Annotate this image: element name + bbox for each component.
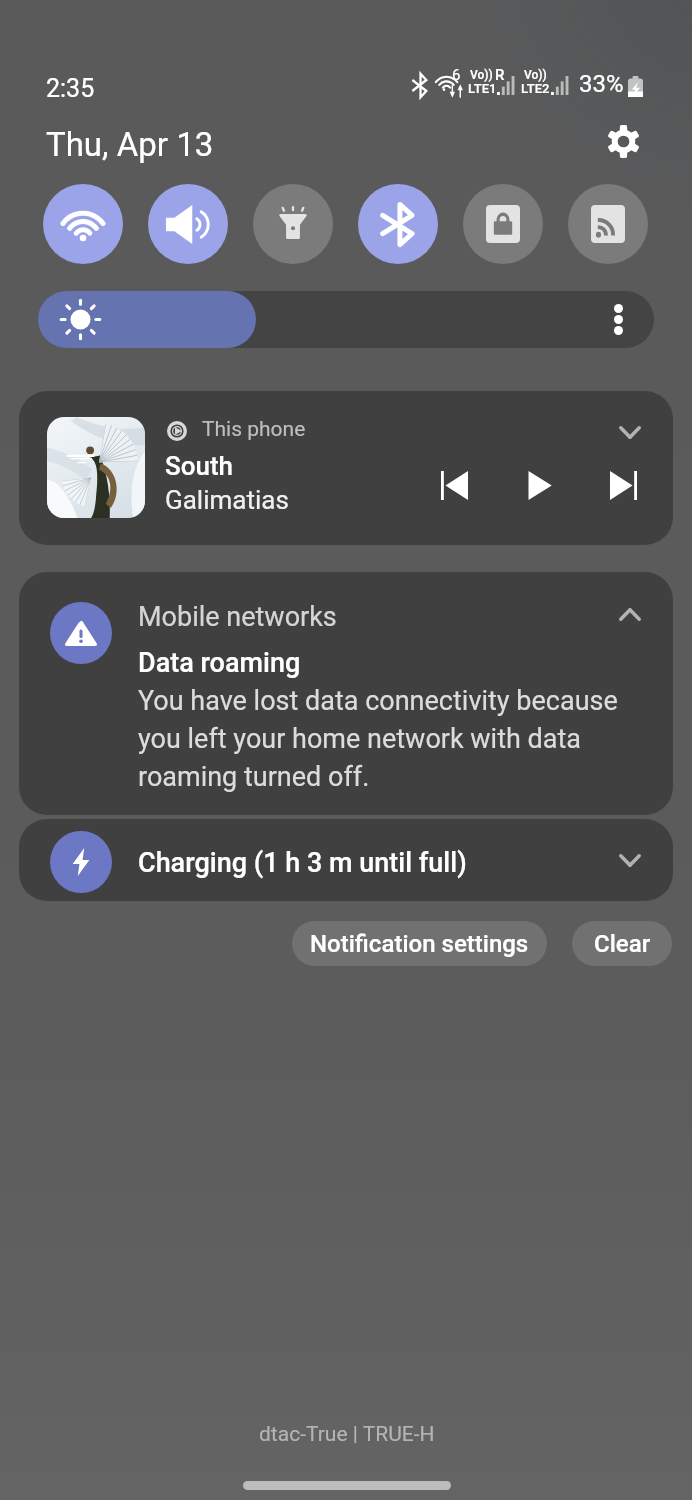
staticText: Charging (1 h 3 m until full) <box>138 847 467 879</box>
button[interactable]: Brightness <box>38 291 654 348</box>
button[interactable]: Bluetooth <box>358 184 438 264</box>
staticText: Thu, Apr 13 <box>46 125 214 164</box>
staticText: Notification settings <box>310 930 529 958</box>
staticText: R <box>495 66 505 84</box>
staticText: dtac-True | TRUE-H <box>259 1422 435 1447</box>
staticText: Vo)) <box>470 68 493 82</box>
button[interactable]: Wi-Fi <box>43 184 123 264</box>
staticText: Clear <box>594 930 651 958</box>
staticText: South <box>165 451 234 481</box>
staticText: Galimatias <box>165 485 289 515</box>
button[interactable]: Collapse media <box>607 409 653 455</box>
staticText: 2:35 <box>46 74 95 103</box>
button[interactable]: Settings <box>599 117 647 165</box>
button[interactable]: Brightness options <box>597 291 639 347</box>
staticText: 33% <box>579 70 624 98</box>
staticText: 6 <box>452 66 461 84</box>
button[interactable]: Play <box>516 463 560 507</box>
button[interactable]: Mobile networks <box>19 572 673 815</box>
staticText: LTE1 <box>468 81 497 96</box>
staticText: This phone <box>202 417 306 442</box>
staticText: Vo)) <box>524 68 547 82</box>
button[interactable]: Clear <box>572 921 672 966</box>
button[interactable]: Next <box>601 463 645 507</box>
button[interactable]: Previous <box>432 463 476 507</box>
staticText: You have lost data connectivity because … <box>138 685 634 793</box>
button[interactable]: Collapse <box>607 591 653 637</box>
button[interactable]: Flashlight <box>253 184 333 264</box>
button[interactable]: Screen cast <box>568 184 648 264</box>
staticText: Data roaming <box>138 647 301 679</box>
button[interactable]: Charging (1 h 3 m until full) <box>19 819 673 901</box>
button[interactable]: Notification settings <box>292 921 547 966</box>
staticText: LTE2 <box>521 81 550 96</box>
staticText: Mobile networks <box>138 601 337 633</box>
button[interactable]: Expand <box>607 837 653 883</box>
button[interactable]: Auto rotate <box>463 184 543 264</box>
button[interactable]: Sound <box>148 184 228 264</box>
button[interactable]: This phone <box>19 391 673 545</box>
